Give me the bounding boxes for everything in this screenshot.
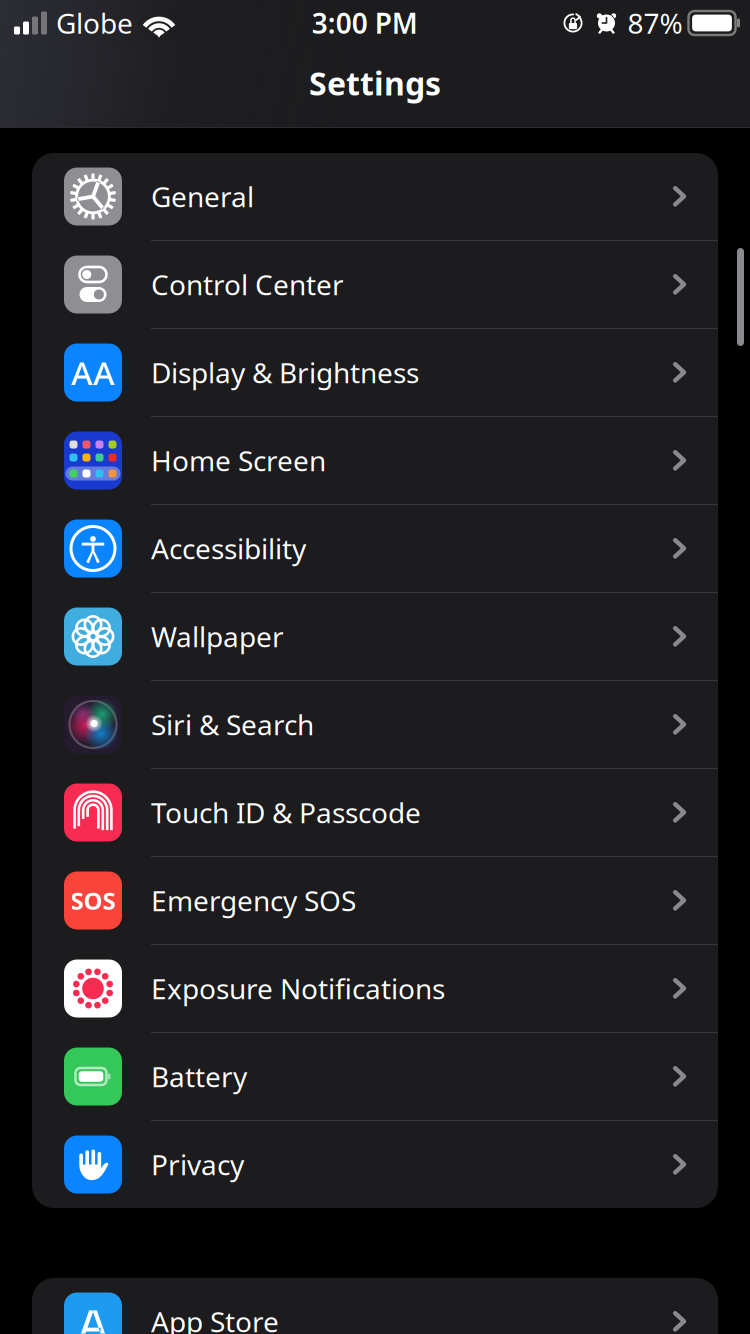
staticText: 3:00 PM bbox=[312, 4, 418, 42]
button[interactable]: Siri & Search bbox=[32, 681, 718, 768]
staticText: General bbox=[151, 178, 254, 215]
button[interactable]: Exposure Notifications bbox=[32, 945, 718, 1032]
staticText: Siri & Search bbox=[151, 706, 314, 743]
staticText: Exposure Notifications bbox=[151, 970, 445, 1007]
staticText: Accessibility bbox=[151, 530, 306, 567]
button[interactable]: Battery bbox=[32, 1033, 718, 1120]
staticText: Emergency SOS bbox=[151, 882, 356, 919]
button[interactable]: App Store bbox=[32, 1278, 718, 1334]
button[interactable]: Touch ID & Passcode bbox=[32, 769, 718, 856]
button[interactable]: General bbox=[32, 153, 718, 240]
button[interactable]: Accessibility bbox=[32, 505, 718, 592]
button[interactable]: Wallpaper bbox=[32, 593, 718, 680]
button[interactable]: Control Center bbox=[32, 241, 718, 328]
button[interactable]: SOS bbox=[32, 857, 718, 944]
staticText: Control Center bbox=[151, 266, 344, 303]
staticText: 87% bbox=[627, 4, 682, 42]
button[interactable]: Home Screen bbox=[32, 417, 718, 504]
staticText: AA bbox=[71, 350, 115, 395]
staticText: Settings bbox=[309, 62, 441, 104]
staticText: Privacy bbox=[151, 1146, 244, 1183]
button[interactable]: Privacy bbox=[32, 1121, 718, 1208]
staticText: Wallpaper bbox=[151, 618, 284, 655]
staticText: Display & Brightness bbox=[151, 354, 419, 391]
button[interactable]: AA bbox=[32, 329, 718, 416]
staticText: Battery bbox=[151, 1058, 247, 1095]
staticText: SOS bbox=[70, 885, 115, 916]
staticText: App Store bbox=[151, 1303, 279, 1334]
staticText: Touch ID & Passcode bbox=[151, 794, 421, 831]
staticText: Globe bbox=[56, 4, 133, 42]
staticText: Home Screen bbox=[151, 442, 326, 479]
